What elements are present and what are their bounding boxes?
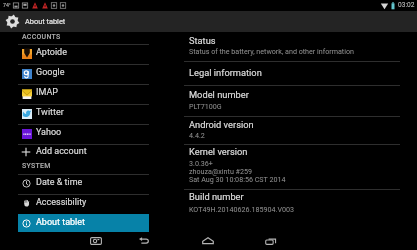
- button[interactable]: [18, 124, 149, 144]
- staticText: Sat Aug 30 10:08:56 CST 2014: [189, 175, 286, 183]
- button[interactable]: [18, 84, 149, 104]
- button[interactable]: [18, 64, 149, 84]
- staticText: Date & time: [36, 177, 83, 188]
- button[interactable]: [18, 44, 149, 64]
- staticText: About tablet: [36, 217, 85, 228]
- button[interactable]: [18, 214, 149, 233]
- button[interactable]: About tablet: [0, 11, 66, 32]
- staticText: Kernel version: [189, 146, 248, 157]
- button[interactable]: Recent apps: [258, 232, 284, 250]
- staticText: Aptoide: [36, 47, 67, 58]
- staticText: Add account: [36, 146, 87, 157]
- staticText: 4.4.2: [189, 131, 205, 139]
- button[interactable]: [18, 144, 149, 161]
- button[interactable]: [18, 194, 149, 213]
- button[interactable]: [184, 144, 400, 189]
- staticText: Status: [189, 35, 216, 46]
- staticText: 74°: [3, 2, 11, 8]
- staticText: 03:02: [398, 1, 415, 9]
- button[interactable]: [184, 85, 400, 115]
- staticText: Model number: [189, 89, 249, 100]
- staticText: zhouza@xintu #259: [189, 167, 253, 175]
- staticText: Accessibility: [36, 197, 87, 208]
- staticText: KOT49H.20140626.185904.V003: [189, 205, 294, 213]
- staticText: SYSTEM: [22, 162, 51, 170]
- staticText: About tablet: [25, 17, 66, 26]
- staticText: 3.0.36+: [189, 159, 213, 167]
- staticText: Yahoo: [36, 127, 62, 138]
- button[interactable]: [184, 116, 400, 144]
- staticText: IMAP: [36, 87, 58, 98]
- staticText: ACCOUNTS: [22, 33, 61, 41]
- staticText: Build number: [189, 191, 244, 202]
- staticText: Legal information: [189, 67, 262, 78]
- button[interactable]: [184, 189, 400, 219]
- staticText: Status of the battery, network, and othe…: [189, 47, 354, 55]
- staticText: Google: [36, 67, 65, 78]
- button[interactable]: Screenshot: [83, 232, 109, 250]
- button[interactable]: [18, 104, 149, 124]
- button[interactable]: Back: [131, 232, 157, 250]
- button[interactable]: [184, 32, 400, 61]
- staticText: PLT7100G: [189, 102, 222, 110]
- button[interactable]: [184, 61, 400, 85]
- staticText: Twitter: [36, 107, 64, 118]
- button[interactable]: [18, 174, 149, 193]
- button[interactable]: Home: [195, 232, 221, 250]
- staticText: Android version: [189, 119, 254, 130]
